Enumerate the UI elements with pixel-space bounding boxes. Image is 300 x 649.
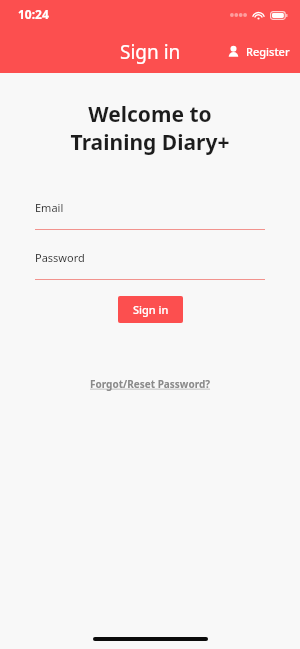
staticText: 10:24 xyxy=(18,6,49,22)
button[interactable]: Register xyxy=(217,36,300,67)
staticText: Sign in xyxy=(133,302,169,317)
staticText: Forgot/Reset Password? xyxy=(90,377,211,391)
staticText: Email xyxy=(35,200,64,215)
button[interactable]: Password xyxy=(0,250,300,280)
button[interactable]: Forgot/Reset Password? xyxy=(82,373,219,395)
staticText: Welcome to Training Diary+ xyxy=(0,100,300,156)
button[interactable]: Email xyxy=(0,200,300,230)
staticText: Password xyxy=(35,250,85,265)
other: Register xyxy=(227,45,240,58)
button[interactable]: Sign in xyxy=(118,296,183,323)
staticText: Register xyxy=(246,44,290,59)
staticText: Sign in xyxy=(120,39,181,65)
